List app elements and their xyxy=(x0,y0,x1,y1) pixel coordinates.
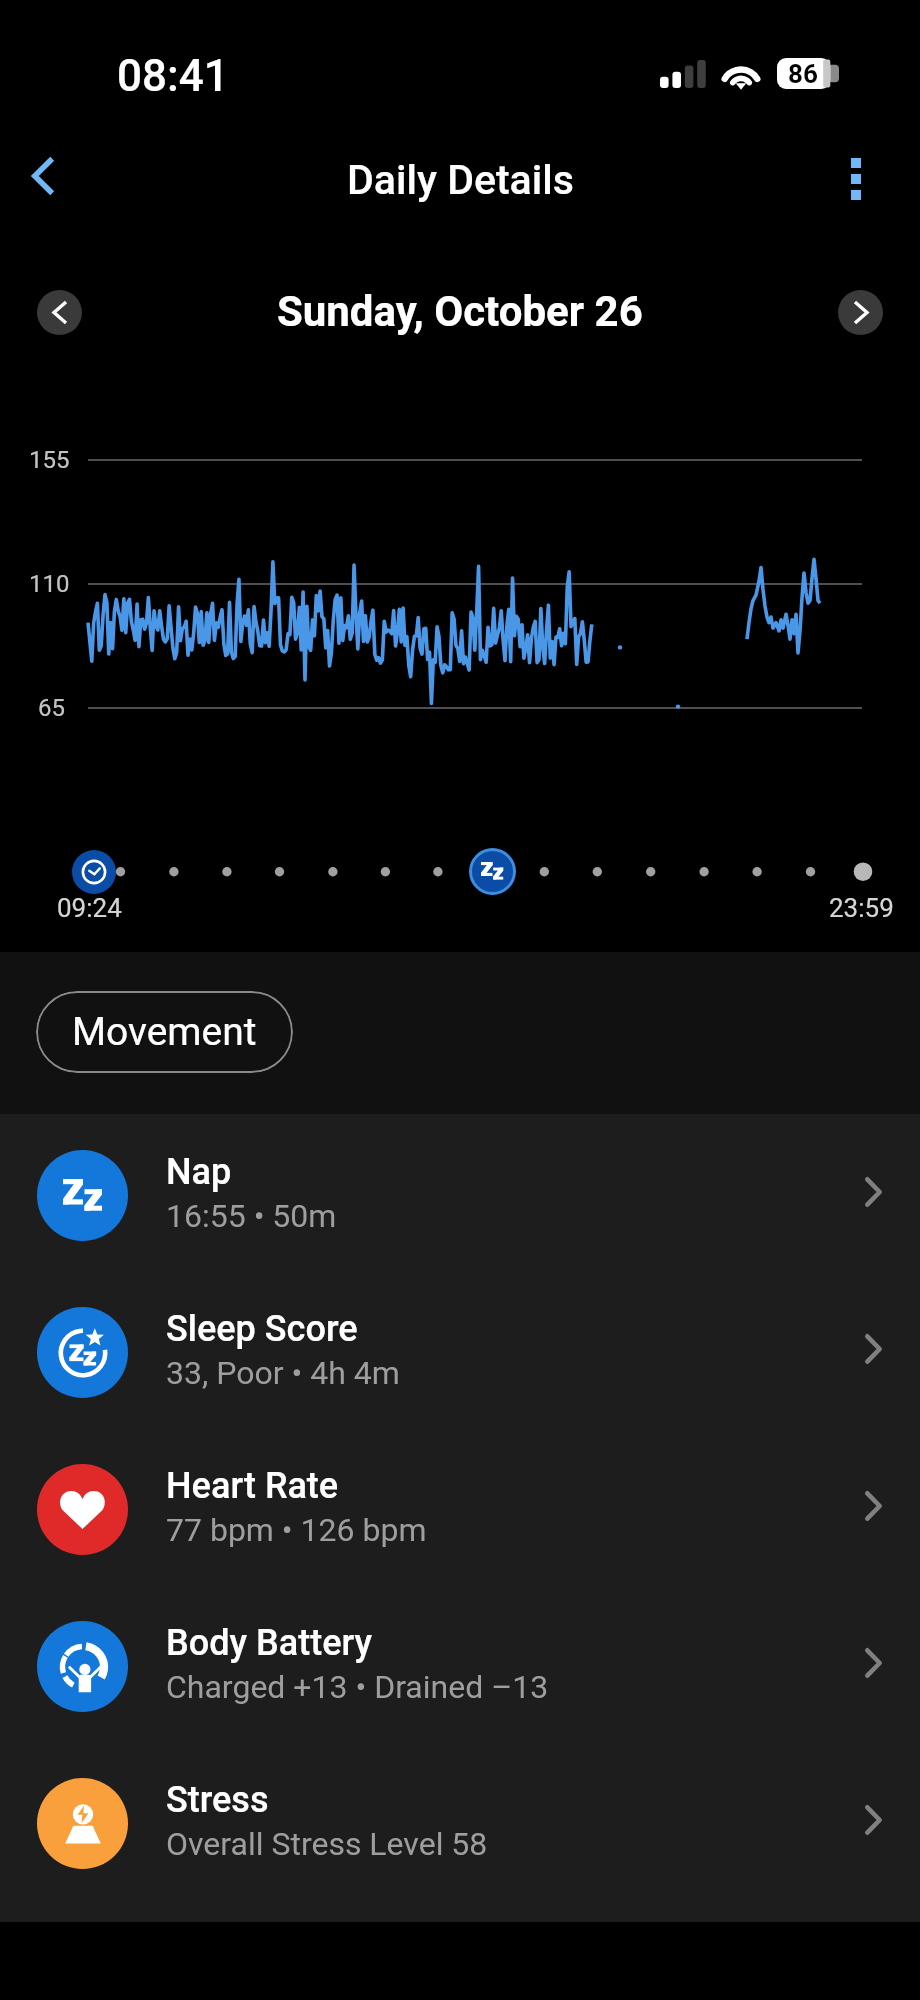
button[interactable]: Day start xyxy=(72,850,116,894)
staticText: Sleep Score xyxy=(166,1308,358,1350)
staticText: 23:59 xyxy=(829,893,894,923)
button[interactable]: Nap xyxy=(0,1117,920,1274)
staticText: Movement xyxy=(72,1009,257,1055)
button[interactable]: Nap event xyxy=(469,848,516,895)
staticText: 65 xyxy=(38,694,65,722)
staticText: 08:41 xyxy=(117,50,229,102)
staticText: 155 xyxy=(29,446,70,474)
staticText: 77 bpm • 126 bpm xyxy=(166,1511,427,1549)
button[interactable]: Stress xyxy=(0,1745,920,1902)
staticText: Stress xyxy=(166,1779,269,1821)
staticText: Charged +13 • Drained –13 xyxy=(166,1668,549,1706)
button[interactable]: Movement xyxy=(36,991,293,1073)
button[interactable]: Previous day xyxy=(37,290,82,335)
staticText: 86 xyxy=(788,59,818,89)
button[interactable]: Body Battery xyxy=(0,1588,920,1745)
staticText: 33, Poor • 4h 4m xyxy=(166,1354,400,1392)
staticText: 16:55 • 50m xyxy=(166,1197,337,1235)
button[interactable]: Next day xyxy=(838,290,883,335)
staticText: Body Battery xyxy=(166,1622,373,1664)
staticText: 110 xyxy=(29,570,70,598)
staticText: 09:24 xyxy=(57,893,122,923)
button[interactable]: Back xyxy=(1,129,85,223)
button[interactable]: Heart Rate xyxy=(0,1431,920,1588)
staticText: Daily Details xyxy=(347,156,574,204)
staticText: Overall Stress Level 58 xyxy=(166,1825,488,1863)
staticText: Nap xyxy=(166,1151,232,1193)
button[interactable]: More options xyxy=(821,132,891,226)
button[interactable]: Sleep Score xyxy=(0,1274,920,1431)
staticText: Heart Rate xyxy=(166,1465,339,1507)
staticText: Sunday, October 26 xyxy=(277,287,643,336)
